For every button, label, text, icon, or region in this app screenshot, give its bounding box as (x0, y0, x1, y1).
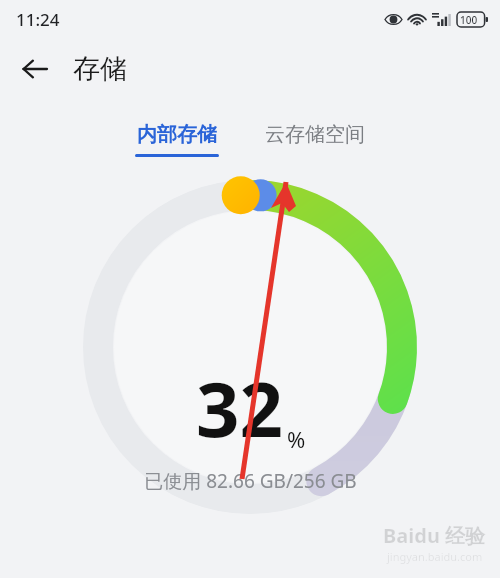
staticText: 32 (196, 356, 283, 460)
staticText: % (287, 424, 306, 454)
button[interactable]: 内部存储 (131, 120, 223, 159)
staticText: 内部存储 (137, 122, 217, 147)
button[interactable]: 云存储空间 (261, 120, 369, 159)
staticText: 云存储空间 (265, 122, 365, 147)
staticText: 存储 (73, 52, 127, 86)
staticText: jingyan.baidu.com (387, 549, 483, 564)
button[interactable]: Back (12, 46, 58, 92)
staticText: 100 (460, 13, 478, 27)
staticText: Baidu 经验 (383, 522, 486, 549)
staticText: 11:24 (16, 8, 60, 31)
staticText: 已使用 82.66 GB/256 GB (144, 468, 357, 494)
